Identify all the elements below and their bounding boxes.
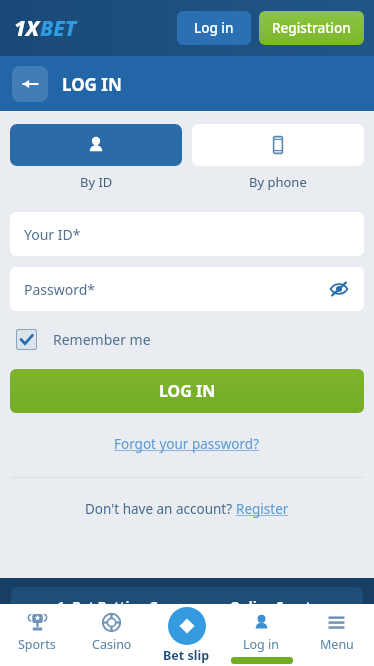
button[interactable] — [10, 124, 182, 166]
button[interactable]: Remember me — [16, 329, 151, 350]
button[interactable]: Sports — [0, 604, 74, 666]
staticText: LOG IN — [62, 73, 122, 96]
staticText: Casino — [92, 636, 132, 653]
staticText: Don't have an account? — [85, 500, 236, 518]
staticText: BET — [40, 14, 77, 43]
button[interactable]: Register — [236, 500, 289, 518]
button[interactable]: Registration — [259, 11, 364, 45]
staticText: Remember me — [53, 330, 151, 349]
button[interactable]: Log in — [224, 604, 299, 666]
button[interactable]: Your ID* — [10, 212, 364, 256]
button[interactable] — [192, 124, 364, 166]
button[interactable]: LOG IN — [10, 369, 364, 413]
button[interactable]: Log in — [177, 11, 251, 45]
staticText: Password* — [24, 280, 96, 299]
staticText: 1xBet Betting Company — Online Sports — [57, 597, 318, 615]
button[interactable]: Back — [12, 66, 48, 102]
staticText: By phone — [249, 173, 307, 191]
staticText: 1X — [14, 14, 40, 43]
staticText: Sports — [18, 636, 56, 653]
staticText: LOG IN — [159, 380, 216, 402]
staticText: Registration — [272, 19, 351, 37]
button[interactable]: Password* — [10, 267, 364, 311]
staticText: Your ID* — [24, 225, 81, 244]
staticText: By ID — [80, 173, 113, 191]
staticText: Menu — [320, 636, 354, 653]
button[interactable]: Forgot your password? — [114, 435, 260, 453]
button[interactable]: Menu — [299, 604, 374, 666]
button[interactable]: Casino — [74, 604, 149, 666]
staticText: Log in — [194, 19, 234, 37]
staticText: Forgot your password? — [114, 435, 260, 453]
staticText: Bet slip — [163, 647, 210, 664]
button[interactable]: Bet slip — [149, 604, 224, 666]
button[interactable]: Show password — [326, 276, 352, 302]
staticText: Log in — [243, 636, 280, 653]
staticText: Register — [236, 500, 289, 518]
